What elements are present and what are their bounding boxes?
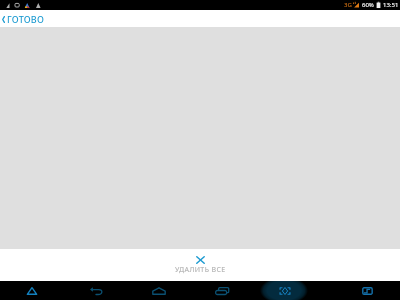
button[interactable]: ГОТОВО (0, 13, 51, 25)
button[interactable]: Back (80, 281, 112, 300)
button[interactable]: Recent apps (206, 281, 238, 300)
button[interactable]: Multi window (352, 281, 384, 300)
button[interactable]: Screen capture (269, 281, 301, 300)
button[interactable]: УДАЛИТЬ ВСЕ (161, 249, 240, 279)
staticText: 60% (362, 1, 374, 9)
button[interactable]: Home (143, 281, 175, 300)
staticText: 13:51 (383, 1, 399, 9)
staticText: УДАЛИТЬ ВСЕ (175, 265, 226, 275)
staticText: 3G (344, 1, 352, 9)
staticText: ГОТОВО (7, 13, 45, 25)
button[interactable]: Menu (16, 281, 48, 300)
